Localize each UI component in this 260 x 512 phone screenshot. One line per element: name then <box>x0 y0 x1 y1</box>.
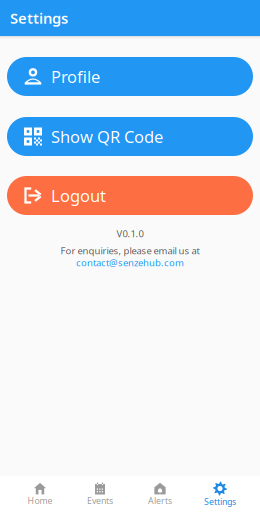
staticText: Settings <box>10 8 68 28</box>
staticText: Events <box>87 494 113 506</box>
staticText: Home <box>27 494 52 506</box>
staticText: For enquiries, please email us at <box>60 244 199 257</box>
staticText: Settings <box>204 495 236 507</box>
staticText: Alerts <box>148 494 172 506</box>
button[interactable]: Logout <box>7 176 253 215</box>
staticText: Logout <box>51 184 106 207</box>
staticText: Show QR Code <box>51 125 163 148</box>
button[interactable]: Profile <box>7 57 253 96</box>
button[interactable]: Settings <box>190 476 250 512</box>
button[interactable]: Home <box>10 476 70 512</box>
staticText: contact@senzehub.com <box>76 256 184 269</box>
button[interactable]: Alerts <box>130 476 190 512</box>
staticText: Profile <box>51 65 100 88</box>
staticText: V0.1.0 <box>116 227 143 240</box>
button[interactable]: Show QR Code <box>7 117 253 156</box>
button[interactable]: Events <box>70 476 130 512</box>
